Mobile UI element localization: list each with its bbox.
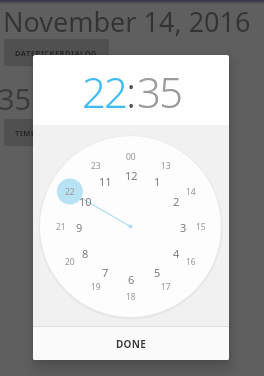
staticText: 18 (126, 291, 136, 303)
staticText: 22 (65, 186, 75, 198)
staticText: 23 (91, 160, 101, 172)
staticText: 13 (161, 160, 171, 172)
staticText: 35 (0, 79, 32, 118)
button[interactable]: DATEPICKERDIALOG (4, 39, 109, 66)
staticText: 16 (186, 256, 196, 268)
staticText: 17 (161, 281, 171, 293)
staticText: 2 (173, 194, 180, 209)
staticText: 22 (82, 63, 126, 115)
button[interactable]: DONE (33, 327, 229, 360)
staticText: DATEPICKERDIALOG (15, 48, 98, 58)
staticText: 9 (76, 220, 83, 235)
staticText: 35 (137, 63, 181, 115)
button[interactable]: TIMEPICKERDIALOG (4, 119, 109, 146)
staticText: 14 (186, 186, 196, 198)
staticText: 1 (154, 174, 161, 189)
staticText: TIMEPICKERDIALOG (15, 128, 98, 138)
staticText: 20 (65, 256, 75, 268)
staticText: 4 (173, 246, 180, 261)
staticText: 21 (56, 221, 66, 233)
staticText: 19 (91, 281, 101, 293)
staticText: 6 (128, 272, 135, 287)
staticText: 00 (126, 151, 136, 163)
staticText: 3 (180, 220, 187, 235)
staticText: 11 (99, 174, 112, 189)
staticText: DONE (116, 337, 147, 351)
staticText: 5 (154, 265, 161, 280)
staticText: November 14, 2016 (3, 3, 251, 40)
staticText: 7 (102, 265, 109, 280)
staticText: 10 (79, 194, 92, 209)
staticText: 8 (82, 246, 89, 261)
staticText: : (126, 63, 137, 115)
staticText: 12 (125, 168, 138, 183)
staticText: 15 (196, 221, 206, 233)
